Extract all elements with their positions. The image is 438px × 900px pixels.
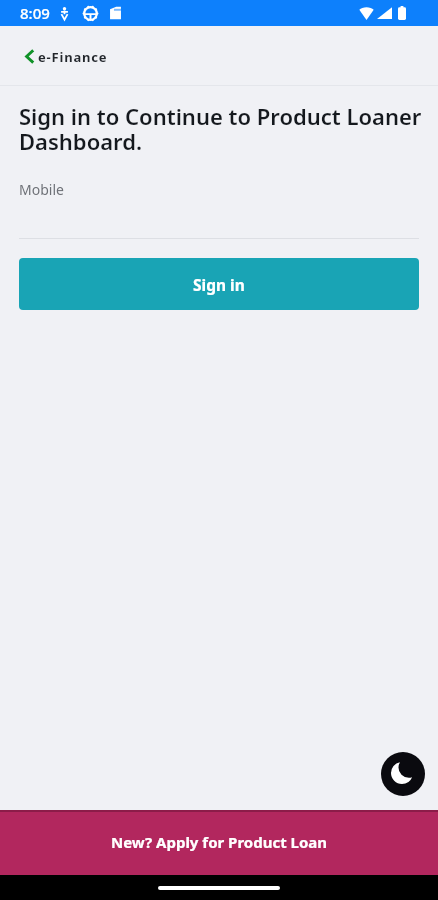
staticText: 8:09 [20,3,50,23]
button[interactable]: Sign in [19,258,419,310]
staticText: Sign in [193,274,245,295]
staticText: e-Finance [38,48,108,66]
button[interactable]: New? Apply for Product Loan [0,810,438,875]
staticText: Sign in to Continue to Product Loaner Da… [19,101,426,156]
staticText: Mobile [19,180,64,199]
button[interactable]: Toggle dark mode [381,752,425,796]
button[interactable]: e-Finance [0,41,120,71]
staticText: New? Apply for Product Loan [111,832,328,852]
